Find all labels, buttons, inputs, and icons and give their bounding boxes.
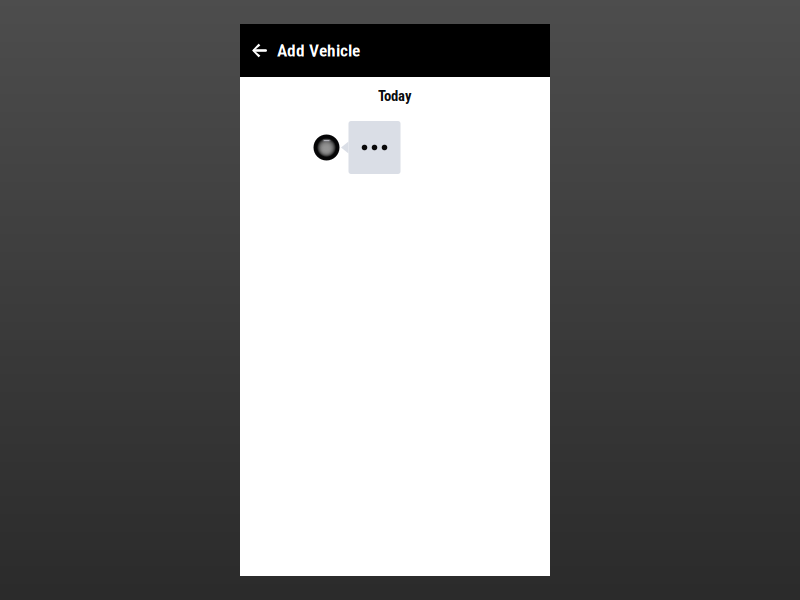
button[interactable]: Add Vehicle — [277, 24, 360, 77]
button[interactable]: Back — [244, 24, 275, 77]
staticText: Add Vehicle — [277, 40, 360, 61]
staticText: Today — [378, 87, 412, 105]
